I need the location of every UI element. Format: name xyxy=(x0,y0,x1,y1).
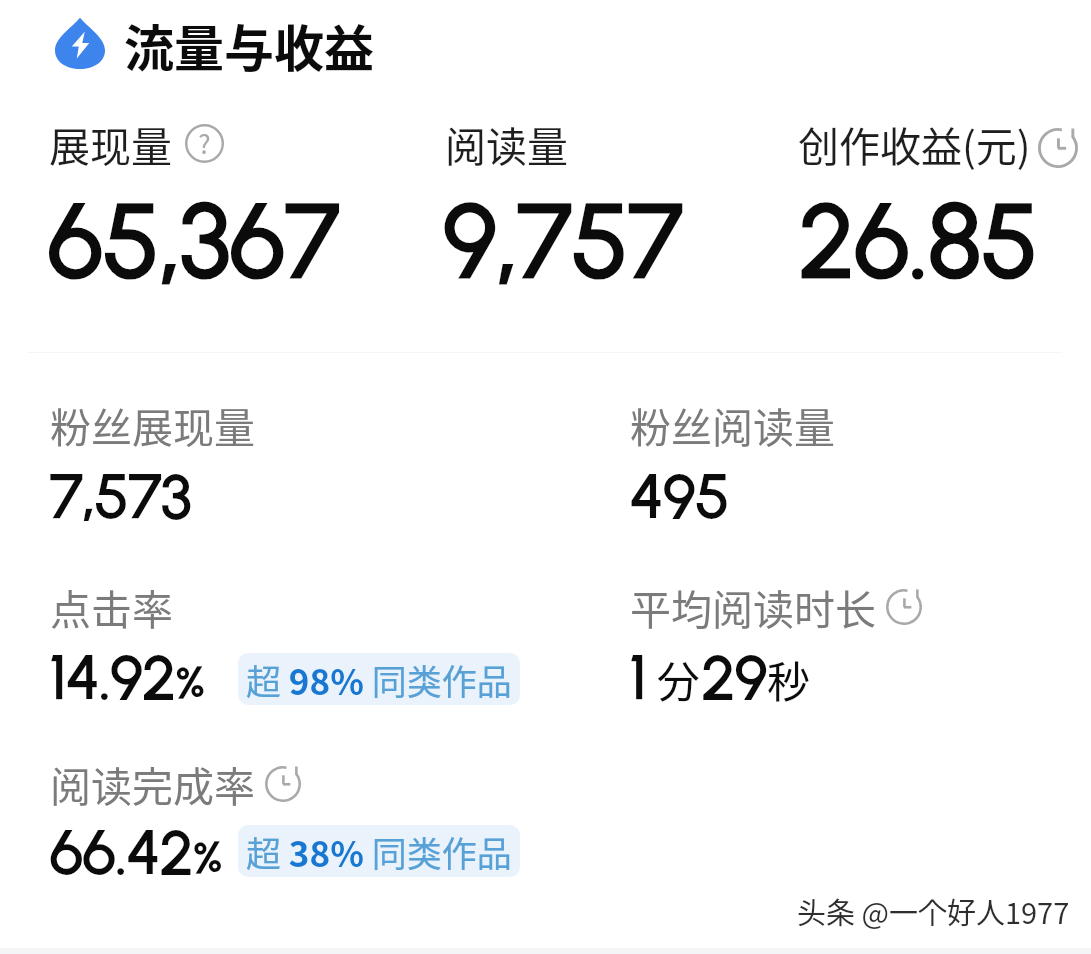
staticText: 粉丝阅读量 xyxy=(630,395,835,454)
staticText: 1 分29秒 xyxy=(630,640,813,713)
staticText: 阅读量 xyxy=(445,114,568,173)
button[interactable]: 超 98% 同类作品 xyxy=(238,653,520,705)
button[interactable]: Average read duration info xyxy=(886,589,922,625)
staticText: 头条 @一个好人1977 xyxy=(797,890,1070,932)
staticText: 超 38% 同类作品 xyxy=(246,826,512,877)
staticText: 流量与收益 xyxy=(124,9,374,81)
staticText: 14.92% xyxy=(50,640,205,713)
button[interactable]: 超 38% 同类作品 xyxy=(238,825,520,877)
staticText: 粉丝展现量 xyxy=(50,395,255,454)
staticText: 创作收益(元) xyxy=(798,114,1031,173)
staticText: 9,757 xyxy=(443,180,683,302)
button[interactable]: Read completion info xyxy=(265,766,301,802)
staticText: 65,367 xyxy=(48,180,340,302)
staticText: 7,573 xyxy=(50,459,192,532)
staticText: 26.85 xyxy=(799,180,1038,302)
staticText: 阅读完成率 xyxy=(50,754,255,813)
staticText: 超 98% 同类作品 xyxy=(246,654,512,705)
button[interactable]: Help xyxy=(185,124,224,163)
staticText: 展现量 xyxy=(49,114,172,173)
staticText: 495 xyxy=(630,459,730,532)
staticText: 点击率 xyxy=(50,577,173,636)
staticText: 平均阅读时长 xyxy=(630,577,876,636)
button[interactable]: History xyxy=(1038,128,1078,168)
staticText: ? xyxy=(198,124,211,162)
staticText: 66.42% xyxy=(50,815,223,888)
